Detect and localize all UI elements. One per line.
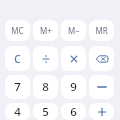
button[interactable]: Minus xyxy=(89,75,114,99)
button[interactable]: MR xyxy=(89,20,114,41)
button[interactable]: Plus xyxy=(89,103,114,120)
button[interactable]: 6 xyxy=(61,103,86,120)
button[interactable]: C xyxy=(5,46,30,71)
button[interactable]: Multiply xyxy=(61,46,86,71)
staticText: C xyxy=(14,52,21,66)
button[interactable]: 7 xyxy=(5,75,30,99)
button[interactable]: Backspace xyxy=(89,46,114,71)
staticText: 5 xyxy=(42,104,49,120)
staticText: 6 xyxy=(70,104,77,120)
button[interactable]: M+ xyxy=(33,20,58,41)
button[interactable]: 9 xyxy=(61,75,86,99)
button[interactable]: MC xyxy=(5,20,30,41)
button[interactable]: 5 xyxy=(33,103,58,120)
staticText: 9 xyxy=(70,79,77,95)
staticText: MR xyxy=(95,25,108,36)
staticText: M+ xyxy=(40,25,52,36)
staticText: M− xyxy=(68,25,80,36)
button[interactable]: 8 xyxy=(33,75,58,99)
button[interactable]: 4 xyxy=(5,103,30,120)
button[interactable]: Divide xyxy=(33,46,58,71)
button[interactable]: M− xyxy=(61,20,86,41)
staticText: 7 xyxy=(14,79,21,95)
staticText: MC xyxy=(11,25,24,36)
staticText: 8 xyxy=(42,79,49,95)
staticText: 4 xyxy=(14,104,21,120)
